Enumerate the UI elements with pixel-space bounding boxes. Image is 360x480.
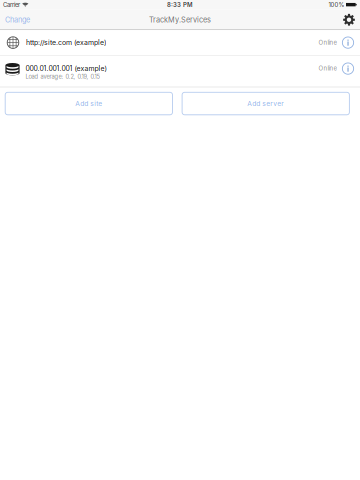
staticText: Change bbox=[5, 15, 30, 24]
button[interactable]: Settings bbox=[338, 9, 360, 30]
staticText: Online bbox=[318, 39, 336, 46]
staticText: Load average: 0.2, 0.19, 0.15 bbox=[25, 73, 99, 80]
button[interactable]: 000.01.001.001 (example) bbox=[0, 56, 360, 87]
staticText: 8:33 PM bbox=[167, 1, 193, 8]
button[interactable]: Add site bbox=[5, 92, 172, 115]
button[interactable]: Change bbox=[0, 9, 35, 30]
staticText: Online bbox=[318, 65, 336, 72]
button[interactable]: http://site.com (example) bbox=[0, 30, 360, 56]
staticText: 100% bbox=[328, 1, 344, 8]
staticText: Add site bbox=[75, 99, 102, 108]
staticText: TrackMy.Services bbox=[149, 15, 211, 24]
staticText: Add server bbox=[247, 99, 284, 108]
staticText: 000.01.001.001 (example) bbox=[25, 64, 107, 73]
staticText: http://site.com (example) bbox=[26, 38, 107, 47]
button[interactable]: Add server bbox=[182, 92, 349, 115]
staticText: Carrier bbox=[3, 1, 20, 8]
